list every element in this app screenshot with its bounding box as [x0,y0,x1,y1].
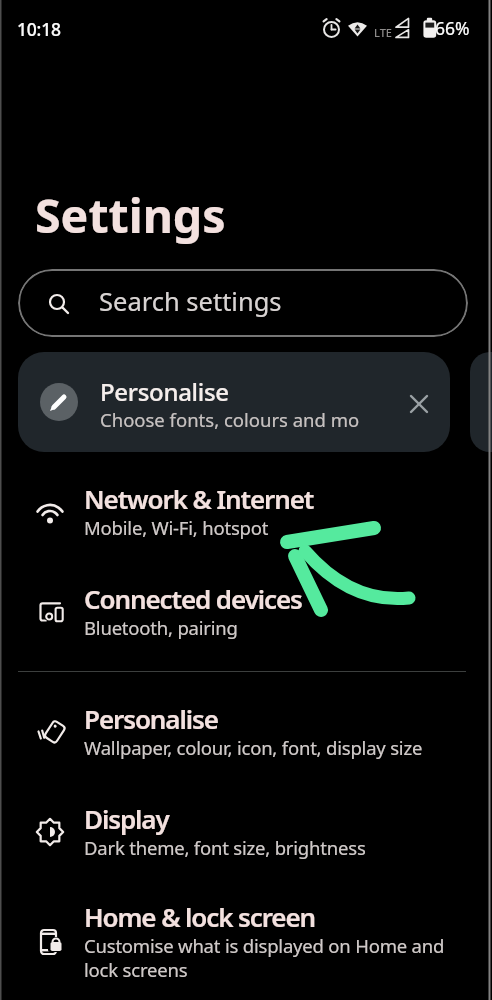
staticText: lock screens [84,957,188,982]
staticText: Connected devices [84,581,302,616]
staticText: Settings [35,183,226,246]
staticText: Network & Internet [84,481,314,516]
button[interactable]: Connected devices [0,564,470,664]
staticText: Personalise [100,375,229,408]
staticText: Wallpaper, colour, icon, font, display s… [84,735,423,760]
button[interactable]: Display [0,784,470,884]
button[interactable]: Home & lock screen [0,882,470,1000]
staticText: Bluetooth, pairing [84,615,238,640]
staticText: Home & lock screen [84,899,316,934]
staticText: 66% [435,16,470,40]
staticText: LTE [374,25,392,40]
staticText: 10:18 [17,17,61,41]
button[interactable]: Personalise [18,352,450,452]
staticText: Dark theme, font size, brightness [84,835,366,860]
button[interactable]: Network & Internet [0,464,470,564]
staticText: Search settings [99,284,282,319]
staticText: Display [84,801,169,836]
staticText: Choose fonts, colours and mo [100,407,388,432]
staticText: Customise what is displayed on Home and [84,933,445,958]
staticText: Mobile, Wi-Fi, hotspot [84,515,269,540]
button[interactable]: Personalise [0,684,470,784]
button[interactable] [401,386,439,424]
staticText: Personalise [84,701,218,736]
button[interactable]: Search settings [18,269,468,337]
